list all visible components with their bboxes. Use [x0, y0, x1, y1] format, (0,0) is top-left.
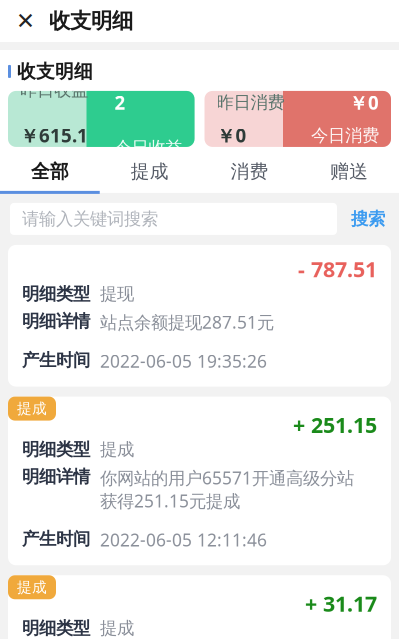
- staticText: 提成: [100, 618, 134, 639]
- staticText: 搜索: [351, 208, 385, 230]
- button[interactable]: 赠送: [299, 153, 399, 193]
- staticText: - 787.51: [298, 255, 377, 283]
- button[interactable]: Close: [16, 8, 35, 34]
- button[interactable]: 提成: [100, 153, 200, 193]
- staticText: 提成: [17, 400, 47, 418]
- staticText: ￥615.19: [20, 123, 88, 173]
- staticText: 产生时间: [22, 528, 90, 549]
- staticText: ￥0: [216, 123, 246, 148]
- staticText: + 31.17: [305, 589, 377, 618]
- staticText: 提成: [131, 160, 169, 183]
- staticText: + 251.15: [293, 411, 377, 439]
- staticText: 收支明细: [49, 8, 133, 34]
- staticText: 赠送: [330, 160, 368, 183]
- staticText: 今日消费: [311, 125, 379, 146]
- staticText: 明细详情: [22, 466, 90, 487]
- button[interactable]: + 31.17: [8, 575, 391, 639]
- staticText: 站点余额提现287.51元: [100, 310, 274, 333]
- staticText: 2022-06-05 19:35:26: [100, 350, 267, 373]
- staticText: 你网站的用户65571开通高级分站获得251.15元提成: [100, 466, 354, 512]
- staticText: 收支明细: [17, 60, 93, 83]
- button[interactable]: 搜索: [347, 208, 389, 230]
- staticText: 明细类型: [22, 439, 90, 460]
- staticText: 全部: [31, 160, 69, 183]
- staticText: 明细类型: [22, 283, 90, 305]
- button[interactable]: - 787.51: [8, 245, 391, 387]
- staticText: 昨日收益: [20, 79, 88, 101]
- staticText: 提成: [100, 439, 134, 460]
- staticText: 2022-06-05 12:11:46: [100, 528, 267, 551]
- staticText: 产生时间: [22, 350, 90, 371]
- staticText: 明细详情: [22, 310, 90, 332]
- staticText: ✕: [16, 8, 35, 34]
- staticText: 请输入关键词搜索: [22, 208, 158, 230]
- staticText: ￥0: [349, 90, 379, 115]
- button[interactable]: 消费: [199, 153, 299, 193]
- button[interactable]: 全部: [0, 153, 100, 193]
- staticText: 昨日消费: [216, 92, 284, 113]
- staticText: 今日收益: [114, 137, 182, 158]
- staticText: 明细类型: [22, 618, 90, 639]
- staticText: 提现: [100, 283, 134, 305]
- staticText: ￥982.32: [114, 65, 182, 115]
- button[interactable]: + 251.15: [8, 397, 391, 565]
- staticText: 消费: [230, 160, 268, 183]
- staticText: 提成: [17, 578, 47, 596]
